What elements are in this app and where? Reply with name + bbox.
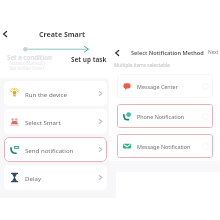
button[interactable]: Run the device bbox=[4, 81, 107, 106]
staticText: Phone Notification bbox=[137, 113, 185, 120]
staticText: Select Smart bbox=[25, 118, 61, 126]
button[interactable]: Back bbox=[111, 47, 122, 58]
staticText: Select Notification Method bbox=[131, 49, 204, 57]
staticText: Message Notification bbox=[137, 143, 191, 150]
staticText: Multiple items selectable bbox=[114, 62, 170, 69]
button[interactable]: Next bbox=[208, 49, 219, 56]
staticText: Tap to Run Smart bbox=[9, 65, 45, 71]
staticText: Message Center bbox=[137, 83, 178, 90]
staticText: Run the device bbox=[25, 90, 67, 98]
staticText: Set a condition bbox=[7, 53, 52, 61]
staticText: Send notification bbox=[25, 146, 74, 154]
button[interactable]: Message Notification bbox=[117, 134, 213, 158]
button[interactable]: Send notification bbox=[4, 137, 107, 162]
staticText: Create Smart bbox=[39, 30, 85, 40]
button[interactable]: Delay bbox=[4, 165, 107, 190]
staticText: Next bbox=[208, 49, 219, 56]
button[interactable]: Select Smart bbox=[4, 109, 107, 134]
button[interactable]: Phone Notification bbox=[117, 104, 213, 128]
button[interactable]: Message Center bbox=[117, 74, 213, 98]
staticText: Activate Manually bbox=[9, 60, 46, 66]
staticText: Set up task bbox=[71, 55, 107, 64]
staticText: Delay bbox=[25, 174, 41, 182]
button[interactable]: Back bbox=[0, 29, 9, 38]
